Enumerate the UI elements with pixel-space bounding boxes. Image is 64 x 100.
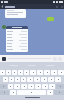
button[interactable]: Back	[0, 4, 5, 9]
button[interactable]: Key	[35, 84, 41, 89]
button[interactable]	[5, 9, 26, 18]
button[interactable]: Search	[54, 4, 59, 9]
button[interactable]: Key	[9, 77, 14, 82]
button[interactable]: Numbers	[0, 90, 9, 95]
button[interactable]: Add attachment	[2, 57, 6, 61]
button[interactable]: Shift	[0, 84, 7, 89]
button[interactable]: Emoji	[53, 57, 57, 61]
button[interactable]: Key	[37, 70, 43, 75]
button[interactable]	[6, 26, 28, 52]
button[interactable]: Key	[27, 77, 33, 82]
button[interactable]: Key	[6, 70, 11, 75]
button[interactable]: Key	[30, 70, 36, 75]
button[interactable]: Key	[0, 70, 5, 75]
button[interactable]	[47, 17, 54, 21]
button[interactable]: Key	[15, 77, 20, 82]
button[interactable]: Key	[55, 77, 61, 82]
button[interactable]: Contact avatar	[2, 25, 6, 29]
button[interactable]: More options	[59, 4, 64, 9]
button[interactable]: Key	[14, 84, 20, 89]
button[interactable]: Key	[48, 77, 54, 82]
button[interactable]: Key	[51, 70, 57, 75]
button[interactable]: Key	[58, 70, 64, 75]
button[interactable]: Key	[34, 77, 40, 82]
button[interactable]: Comma	[10, 90, 16, 95]
button[interactable]: Key	[8, 84, 13, 89]
button[interactable]: Period	[47, 90, 53, 95]
button[interactable]: Key	[18, 70, 23, 75]
button[interactable]: Backspace	[56, 84, 64, 89]
button[interactable]: Key	[24, 70, 29, 75]
button[interactable]: Space	[17, 90, 46, 95]
button[interactable]: Key	[3, 77, 8, 82]
button[interactable]: Send	[58, 57, 62, 61]
button[interactable]: Key	[28, 84, 34, 89]
button[interactable]: Key	[21, 77, 26, 82]
button[interactable]: Key	[49, 84, 55, 89]
button[interactable]: Key	[12, 70, 17, 75]
button[interactable]: Key	[44, 70, 50, 75]
button[interactable]: Key	[41, 77, 47, 82]
button[interactable]: Key	[42, 84, 48, 89]
button[interactable]: Enter	[54, 90, 64, 95]
button[interactable]: Key	[21, 84, 27, 89]
